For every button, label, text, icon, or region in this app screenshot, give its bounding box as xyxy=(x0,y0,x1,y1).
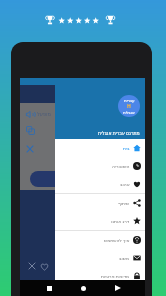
button[interactable]: מדיניות פרטיות xyxy=(55,267,145,285)
staticText: מדיניות פרטיות xyxy=(101,273,130,279)
staticText: אנגלית xyxy=(126,91,141,97)
button[interactable]: דרג אותנו xyxy=(55,212,145,230)
button[interactable]: היסטוריה xyxy=(55,157,145,175)
staticText: איך להשתמש xyxy=(104,237,130,243)
staticText: משוב xyxy=(119,256,130,261)
staticText: אנגלית xyxy=(123,110,135,115)
button[interactable]: תרגם xyxy=(30,171,76,187)
staticText: שיתוף xyxy=(118,201,130,206)
staticText: דרג אותנו xyxy=(111,218,130,224)
staticText: אהוב xyxy=(120,182,130,187)
button[interactable]: שיתוף xyxy=(55,194,145,212)
staticText: בית xyxy=(123,146,130,151)
button[interactable]: איך להשתמש xyxy=(55,231,145,249)
button[interactable]: בית xyxy=(55,139,145,157)
staticText: עברית xyxy=(124,98,135,103)
staticText: מופעל xyxy=(37,111,51,117)
staticText: H xyxy=(127,103,131,110)
button[interactable]: אהוב xyxy=(55,175,145,193)
staticText: מתרגם עברית אנגלית xyxy=(98,130,140,136)
staticText: היסטוריה xyxy=(112,164,130,169)
button[interactable]: משוב xyxy=(55,249,145,267)
